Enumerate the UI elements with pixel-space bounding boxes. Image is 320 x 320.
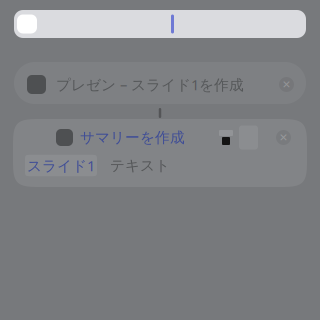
button[interactable]: Message field — [14, 10, 306, 38]
button[interactable]: プレゼン – スライド1を作成 — [14, 62, 306, 104]
staticText: スライド1 — [27, 156, 95, 175]
staticText: テキスト — [110, 156, 170, 174]
staticText: プレゼン – スライド1を作成 — [56, 75, 244, 94]
staticText: ✕ — [282, 78, 291, 90]
staticText: ✕ — [279, 131, 288, 143]
button[interactable]: サマリーを作成 — [13, 119, 307, 187]
staticText: サマリーを作成 — [80, 128, 185, 146]
